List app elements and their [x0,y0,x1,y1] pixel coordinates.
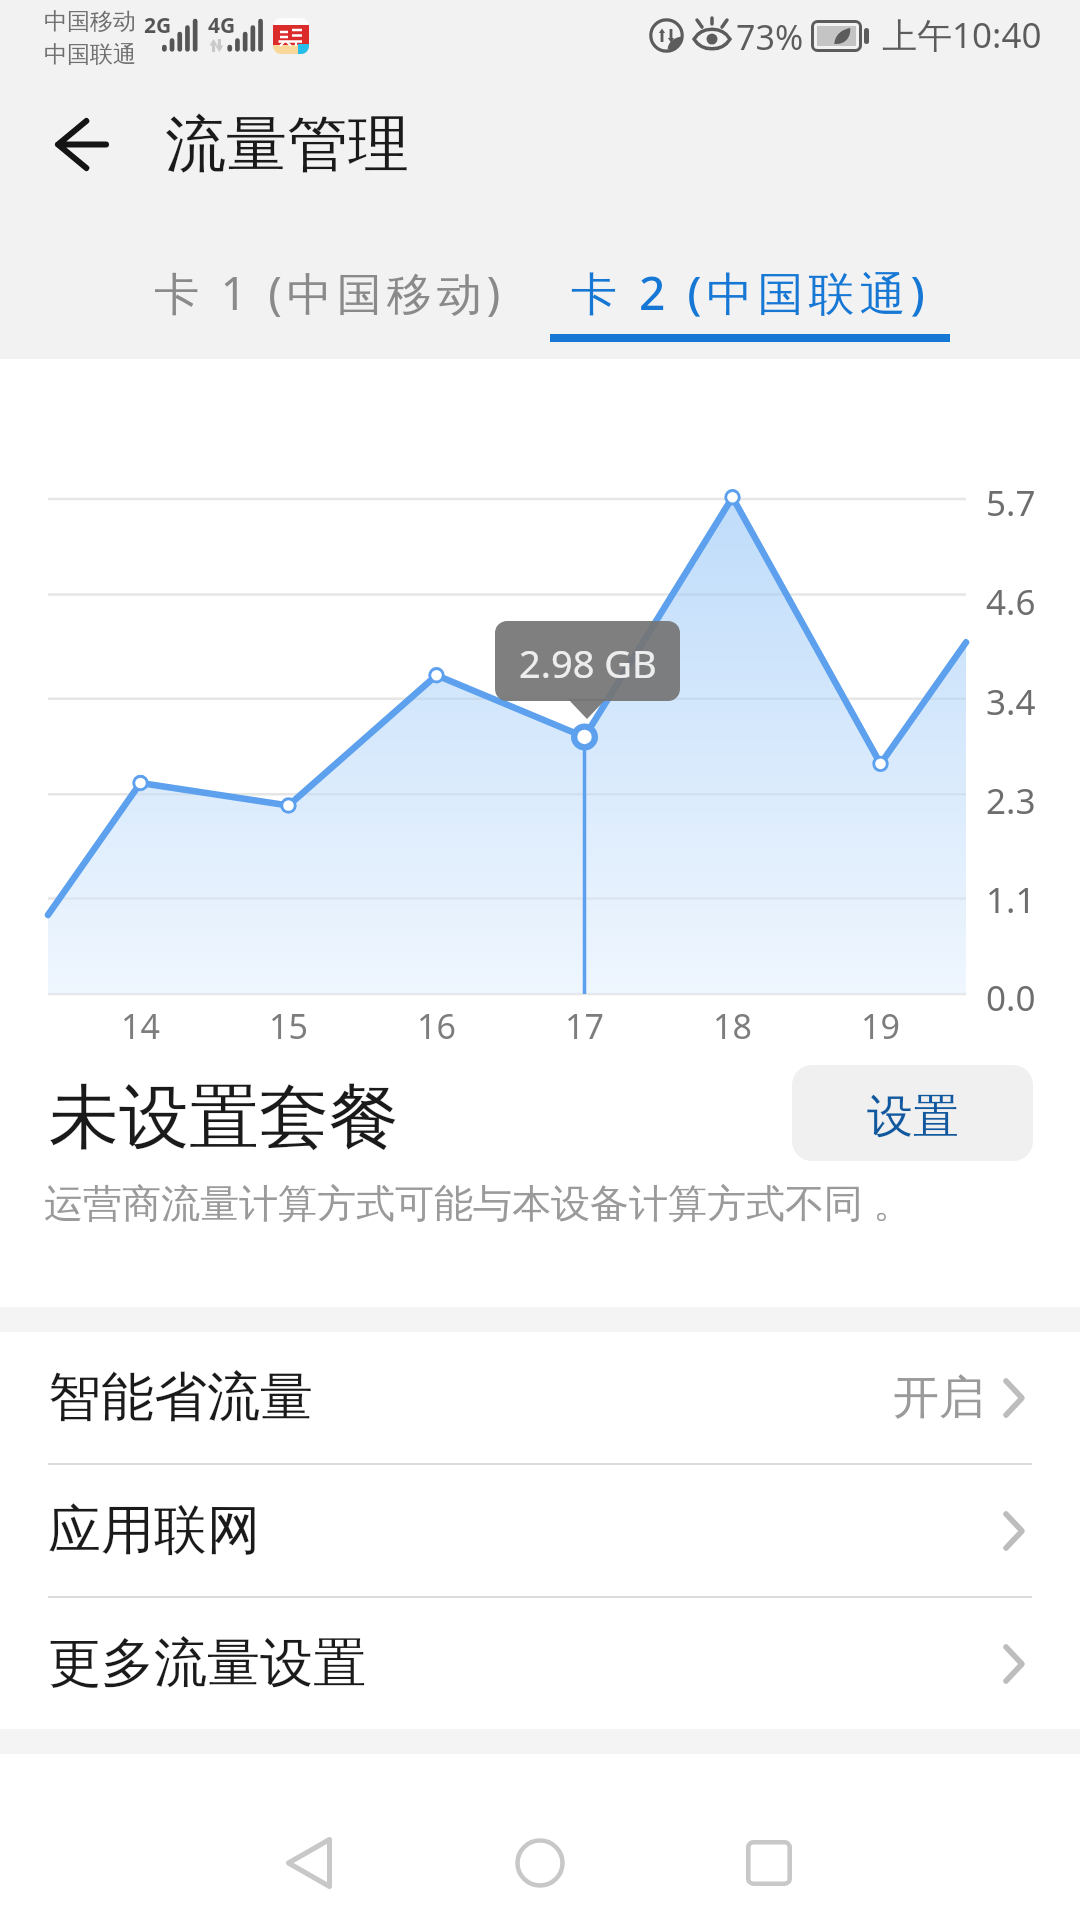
staticText: 卡 2 (中国联通) [571,261,930,324]
staticText: 上午10:40 [882,11,1042,59]
staticText: 15 [269,1003,308,1049]
staticText: 73% [736,14,804,60]
staticText: 3.4 [986,678,1036,726]
button[interactable]: 更多流量设置 [0,1598,1080,1729]
staticText: 18 [713,1003,752,1049]
staticText: 5.7 [986,479,1036,527]
staticText: 2G [144,11,172,40]
button[interactable]: Home [465,1788,615,1920]
staticText: 未设置套餐 [49,1074,399,1162]
staticText: 2.98 GB [519,637,657,689]
staticText: 卡 1 (中国移动) [154,262,506,323]
button[interactable]: Recents [694,1788,844,1920]
staticText: 更多流量设置 [48,1630,366,1697]
staticText: 智能省流量 [48,1364,313,1431]
staticText: 4.6 [986,578,1036,626]
staticText: 运营商流量计算方式可能与本设备计算方式不同 。 [44,1175,913,1228]
staticText: 17 [565,1003,604,1049]
staticText: 2.3 [986,777,1036,825]
staticText: 中国移动 [44,7,136,36]
button[interactable]: 应用联网 [0,1465,1080,1596]
staticText: 开启 [893,1369,985,1427]
button[interactable]: Back [42,104,122,184]
staticText: 14 [121,1003,160,1049]
button[interactable]: Back [234,1788,384,1920]
staticText: 4G [208,11,236,40]
button[interactable]: 设置 [792,1065,1033,1161]
button[interactable]: 卡 2 (中国联通) [550,242,950,342]
staticText: 16 [417,1003,456,1049]
button[interactable]: 卡 1 (中国移动) [135,242,525,342]
staticText: 中国联通 [44,40,136,69]
staticText: 流量管理 [165,106,409,183]
staticText: 19 [861,1003,900,1049]
staticText: 0.0 [986,974,1036,1022]
staticText: 1.1 [986,876,1036,924]
staticText: 应用联网 [48,1497,260,1564]
staticText: 设置 [867,1088,959,1146]
button[interactable]: 智能省流量 [0,1332,1080,1463]
